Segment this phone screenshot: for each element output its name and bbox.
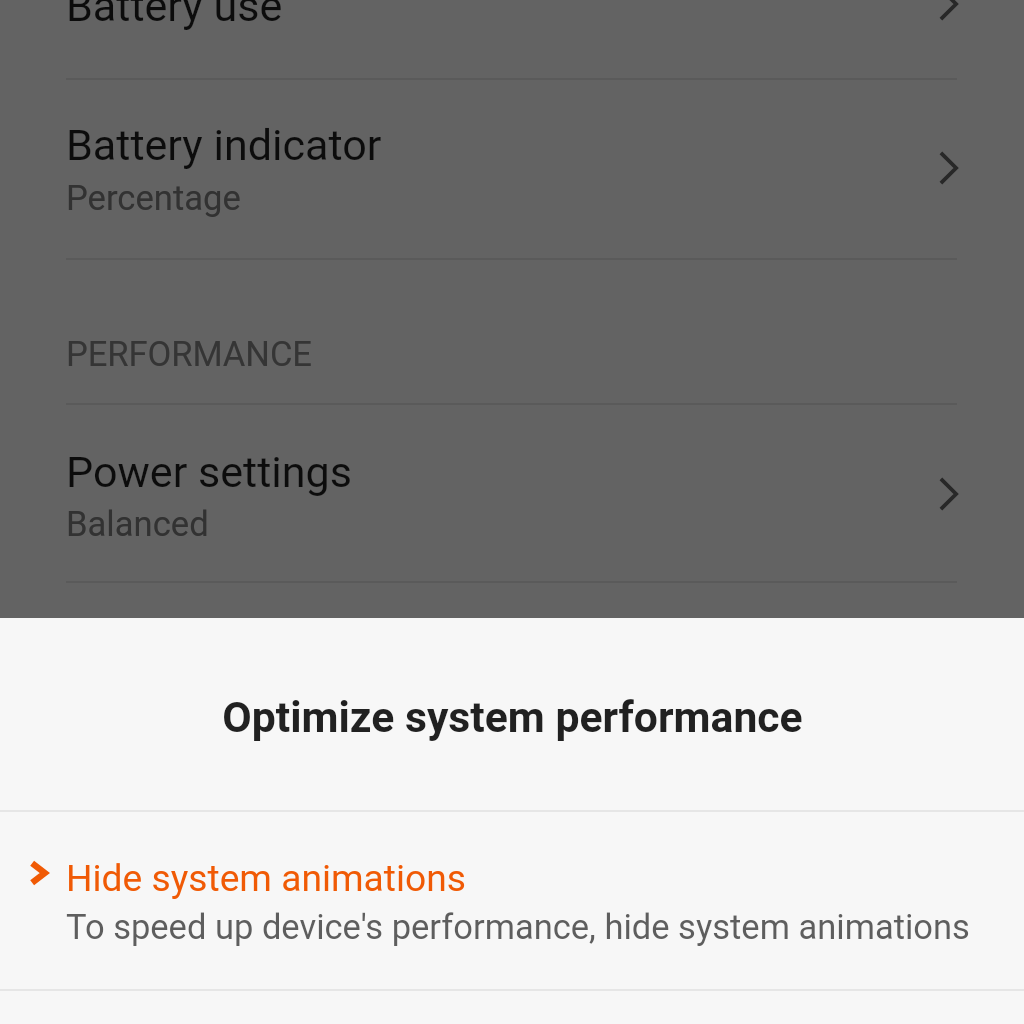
staticText: PERFORMANCE [66,334,312,375]
button[interactable]: Battery indicator [0,78,1024,258]
staticText: Battery use [66,0,283,32]
staticText: Optimize system performance [222,692,803,742]
other: Open [939,151,958,185]
staticText: Battery indicator [66,120,382,171]
other: Open [939,0,958,21]
button[interactable]: Battery use [0,0,1024,78]
button[interactable]: Hide system animations [0,812,1024,991]
staticText: Balanced [66,504,209,545]
staticText: Power settings [66,447,353,498]
staticText: To speed up device's performance, hide s… [66,907,970,947]
other: Open [939,477,958,511]
staticText: Hide system animations [66,856,466,900]
staticText: Percentage [66,178,241,219]
button[interactable]: Power settings [0,403,1024,581]
